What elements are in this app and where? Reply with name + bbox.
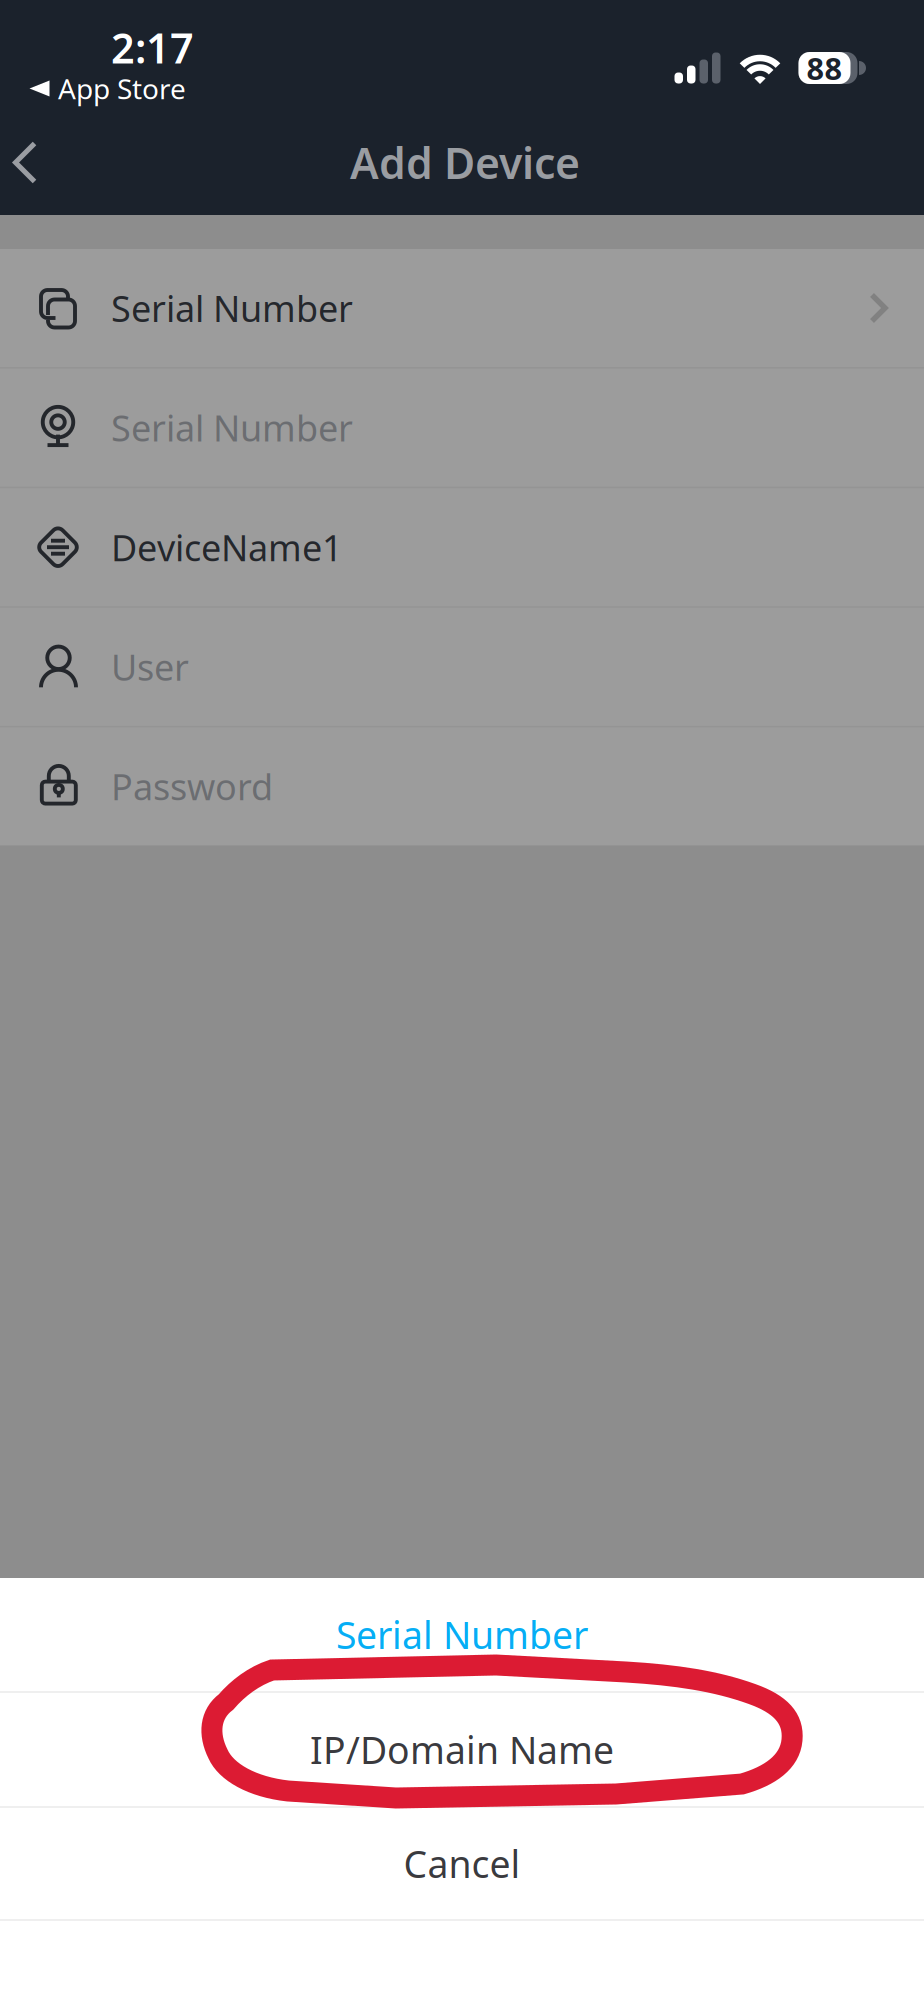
button[interactable]: IP/Domain Name bbox=[0, 1693, 924, 1806]
button[interactable]: Serial Number bbox=[0, 1578, 924, 1691]
staticText: DeviceName1 bbox=[111, 523, 343, 571]
staticText: Serial Number bbox=[336, 1610, 588, 1659]
staticText: App Store bbox=[58, 70, 186, 107]
staticText: Cancel bbox=[403, 1839, 520, 1888]
button[interactable]: Back bbox=[0, 119, 71, 214]
button[interactable]: Password bbox=[0, 727, 924, 845]
staticText: 2:17 bbox=[111, 20, 194, 75]
button[interactable]: User bbox=[0, 608, 924, 726]
staticText: Serial Number bbox=[111, 284, 353, 332]
staticText: Password bbox=[111, 762, 273, 810]
staticText: IP/Domain Name bbox=[310, 1725, 614, 1774]
button[interactable]: DeviceName1 bbox=[0, 488, 924, 606]
staticText: 88 bbox=[806, 48, 842, 88]
button[interactable]: Serial Number bbox=[0, 249, 924, 367]
button[interactable]: Serial Number bbox=[0, 369, 924, 487]
staticText: User bbox=[111, 643, 189, 691]
staticText: Serial Number bbox=[111, 404, 353, 451]
button[interactable]: Cancel bbox=[0, 1808, 924, 1919]
staticText: Add Device bbox=[350, 134, 580, 191]
